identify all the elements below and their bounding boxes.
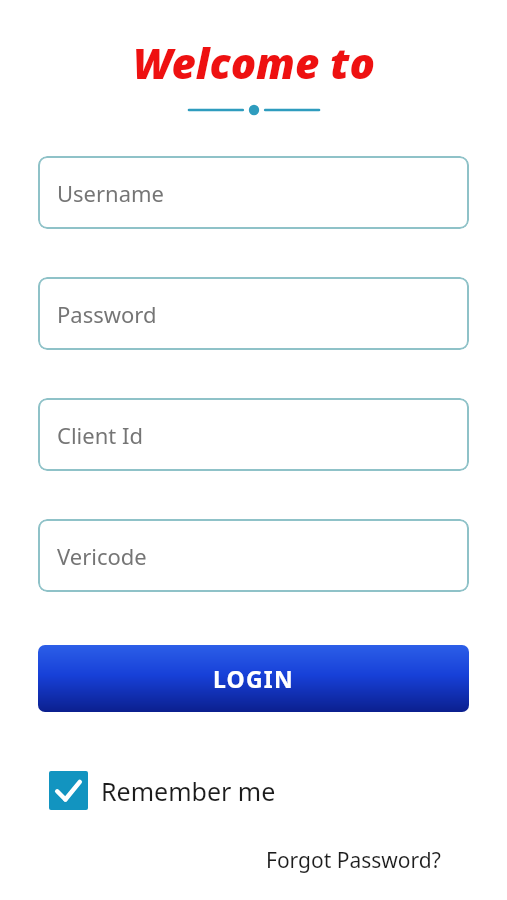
staticText: Welcome to bbox=[133, 34, 375, 91]
staticText: Forgot Password? bbox=[266, 846, 441, 875]
staticText: Remember me bbox=[101, 774, 276, 808]
staticText: Vericode bbox=[57, 541, 147, 571]
staticText: Client Id bbox=[57, 420, 143, 450]
button[interactable]: Forgot Password? bbox=[262, 842, 445, 879]
button[interactable]: Username bbox=[38, 156, 469, 229]
staticText: Username bbox=[57, 178, 165, 208]
other: Remember me checkbox bbox=[49, 771, 88, 810]
button[interactable]: Client Id bbox=[38, 398, 469, 471]
staticText: LOGIN bbox=[213, 663, 294, 694]
button[interactable]: Remember me checkbox bbox=[49, 771, 276, 810]
button[interactable]: Vericode bbox=[38, 519, 469, 592]
button[interactable]: Password bbox=[38, 277, 469, 350]
staticText: Password bbox=[57, 299, 157, 329]
button[interactable]: LOGIN bbox=[38, 645, 469, 712]
